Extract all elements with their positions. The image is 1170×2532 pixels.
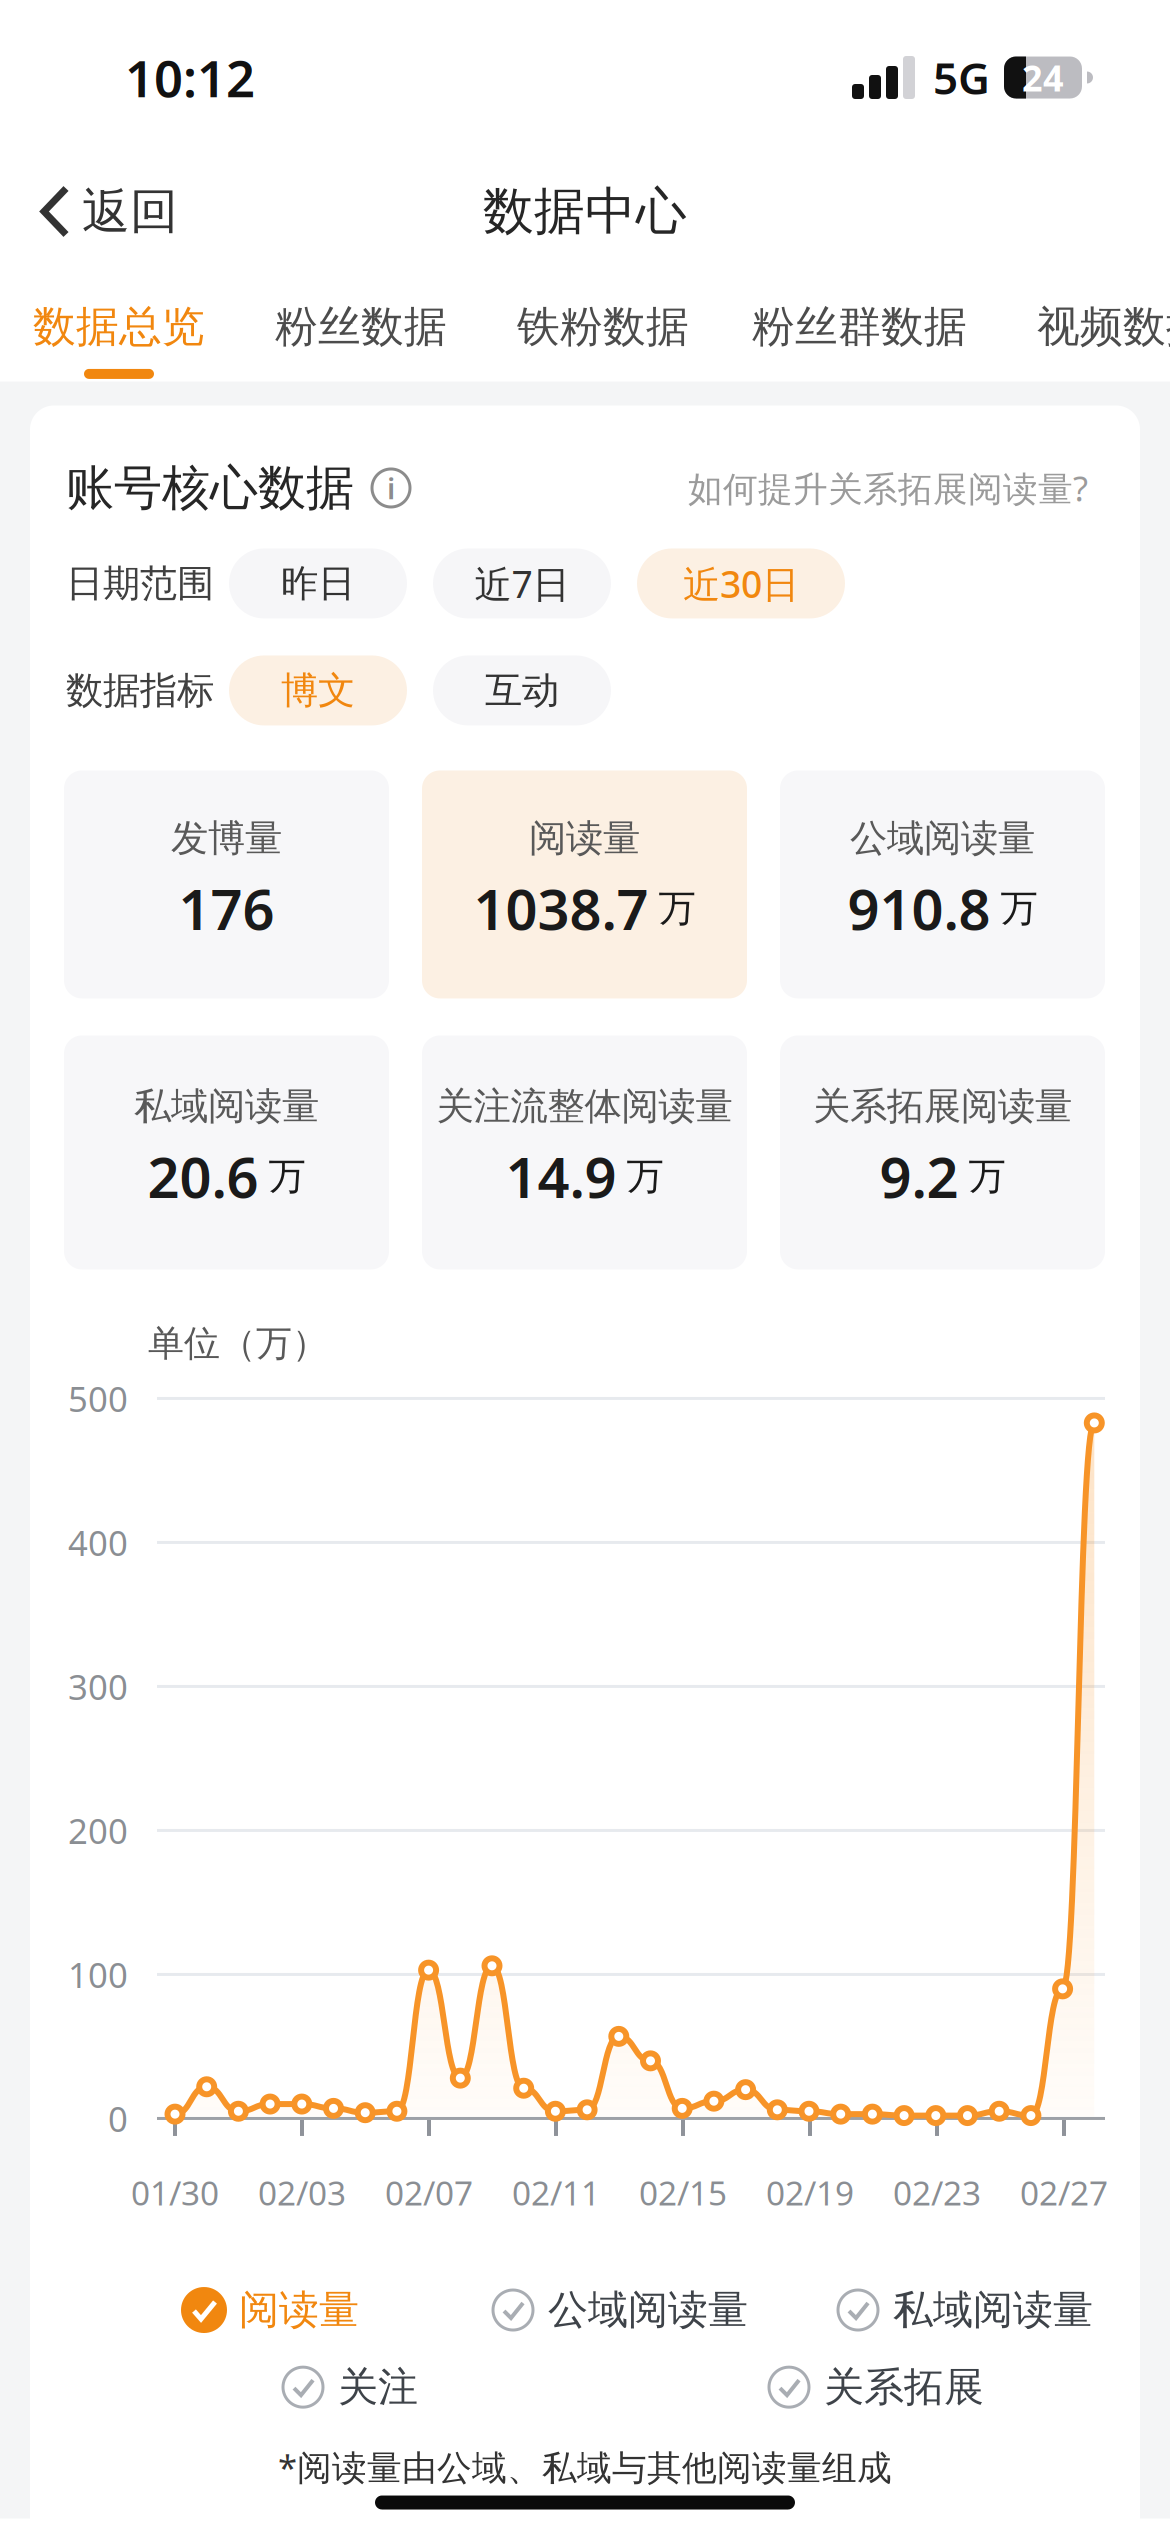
staticText: 300	[68, 1663, 128, 1709]
staticText: 关系拓展阅读量	[813, 1083, 1072, 1129]
staticText: 9.2	[879, 1139, 958, 1214]
staticText: 20.6	[147, 1139, 258, 1214]
button[interactable]: 近7日	[433, 548, 611, 618]
staticText: 500	[68, 1375, 128, 1421]
staticText: 万	[1000, 885, 1037, 931]
staticText: 近30日	[683, 559, 799, 608]
staticText: 万	[268, 1153, 305, 1199]
staticText: 万	[658, 885, 695, 931]
button[interactable]: 铁粉数据	[517, 300, 689, 379]
staticText: 910.8	[847, 871, 990, 946]
button[interactable]: 私域阅读量	[835, 2285, 1093, 2335]
staticText: 1038.7	[473, 871, 648, 946]
staticText: 返回	[82, 182, 178, 241]
staticText: 视频数据	[1037, 300, 1170, 353]
staticText: 5G	[933, 48, 990, 107]
staticText: 10:12	[125, 44, 255, 111]
button[interactable]: 近30日	[637, 548, 845, 618]
button[interactable]: 粉丝数据	[275, 300, 447, 379]
staticText: 公域阅读量	[850, 815, 1035, 861]
staticText: 02/15	[639, 2170, 727, 2215]
staticText: 关系拓展	[824, 2363, 984, 2412]
staticText: 公域阅读量	[548, 2285, 748, 2335]
staticText: 如何提升关系拓展阅读量?	[688, 465, 1088, 511]
staticText: 02/19	[766, 2170, 854, 2215]
staticText: 私域阅读量	[893, 2285, 1093, 2335]
staticText: 02/11	[512, 2170, 600, 2215]
button[interactable]: 如何提升关系拓展阅读量?	[688, 465, 1088, 511]
staticText: 铁粉数据	[517, 300, 689, 353]
staticText: 02/03	[258, 2170, 346, 2215]
staticText: 100	[68, 1951, 128, 1997]
staticText: 互动	[485, 667, 559, 713]
staticText: *阅读量由公域、私域与其他阅读量组成	[278, 2444, 892, 2490]
staticText: 24	[1022, 54, 1064, 101]
staticText: 日期范围	[66, 560, 214, 606]
staticText: 单位（万）	[148, 1321, 328, 1365]
button[interactable]: 博文	[229, 655, 407, 725]
button[interactable]: 昨日	[229, 548, 407, 618]
staticText: 数据指标	[66, 667, 214, 713]
button[interactable]: 视频数据	[1037, 300, 1170, 379]
staticText: 02/07	[385, 2170, 473, 2215]
staticText: 粉丝数据	[275, 300, 447, 353]
staticText: 万	[968, 1153, 1005, 1199]
staticText: 博文	[281, 667, 355, 713]
staticText: 0	[108, 2095, 128, 2141]
staticText: 数据中心	[483, 180, 687, 243]
staticText: 14.9	[505, 1139, 616, 1214]
staticText: 关注	[338, 2363, 418, 2412]
staticText: 176	[178, 871, 274, 946]
button[interactable]: 公域阅读量	[490, 2285, 748, 2335]
button[interactable]: 粉丝群数据	[752, 300, 967, 379]
staticText: 昨日	[281, 560, 355, 606]
staticText: 200	[68, 1807, 128, 1853]
button[interactable]: 互动	[433, 655, 611, 725]
staticText: 01/30	[131, 2170, 219, 2215]
button[interactable]: 阅读量	[181, 2285, 359, 2335]
staticText: 近7日	[474, 559, 569, 608]
staticText: 02/27	[1020, 2170, 1108, 2215]
button[interactable]: 数据总览	[33, 300, 205, 379]
button[interactable]: 关系拓展	[766, 2363, 984, 2412]
staticText: 02/23	[893, 2170, 981, 2215]
staticText: 粉丝群数据	[752, 300, 967, 353]
staticText: 数据总览	[33, 300, 205, 353]
staticText: 400	[68, 1519, 128, 1565]
button[interactable]: 关注	[280, 2363, 418, 2412]
staticText: 阅读量	[529, 815, 640, 861]
staticText: 私域阅读量	[134, 1083, 319, 1129]
staticText: 关注流整体阅读量	[436, 1083, 732, 1129]
button[interactable]: 返回	[0, 182, 178, 241]
staticText: 账号核心数据	[66, 458, 354, 517]
staticText: 万	[626, 1153, 663, 1199]
staticText: i	[387, 468, 395, 507]
staticText: 发博量	[171, 815, 282, 861]
staticText: 阅读量	[239, 2285, 359, 2335]
